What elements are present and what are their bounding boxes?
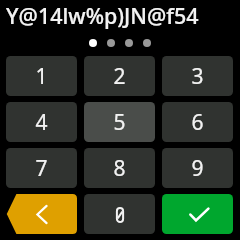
button[interactable]: 3 xyxy=(162,56,233,96)
staticText: 2 xyxy=(113,62,126,91)
staticText: 8 xyxy=(113,154,126,183)
button[interactable]: 2 xyxy=(84,56,155,96)
button[interactable]: 8 xyxy=(84,148,155,188)
staticText: 4 xyxy=(35,108,48,137)
button[interactable]: Backspace xyxy=(6,194,77,234)
button[interactable]: 5 xyxy=(84,102,155,142)
staticText: 3 xyxy=(191,62,204,91)
button[interactable]: 0 xyxy=(84,194,155,234)
button[interactable]: Confirm xyxy=(162,194,233,234)
staticText: 6 xyxy=(191,108,204,137)
staticText: 1 xyxy=(35,62,48,91)
staticText: Y@14lw%p)JN@f54 xyxy=(6,1,240,30)
button[interactable]: 1 xyxy=(6,56,77,96)
button[interactable]: 9 xyxy=(162,148,233,188)
staticText: 9 xyxy=(191,154,204,183)
button[interactable]: 7 xyxy=(6,148,77,188)
button[interactable]: 4 xyxy=(6,102,77,142)
button[interactable]: 6 xyxy=(162,102,233,142)
staticText: 7 xyxy=(35,154,48,183)
staticText: 5 xyxy=(113,108,126,137)
